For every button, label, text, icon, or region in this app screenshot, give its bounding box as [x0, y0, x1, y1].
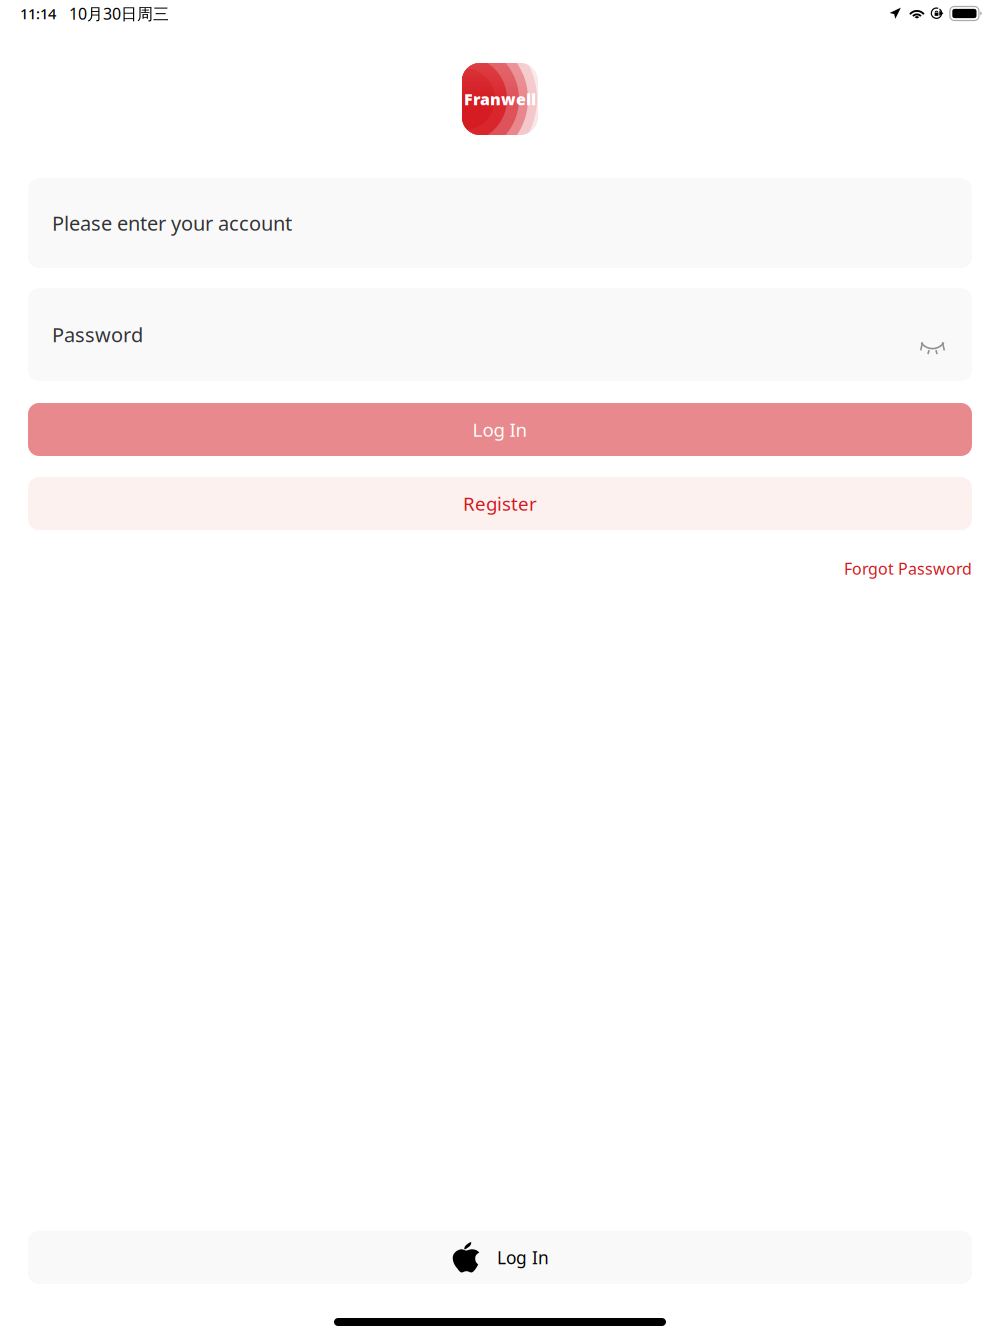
staticText: Log In — [497, 1246, 549, 1269]
staticText: Register — [463, 491, 537, 516]
staticText: 10月30日周三 — [69, 3, 169, 24]
button[interactable]: Log In — [0, 1231, 1000, 1284]
staticText: 11:14 — [20, 4, 56, 23]
staticText: Password — [52, 321, 143, 348]
button[interactable]: Log In — [0, 403, 1000, 456]
button[interactable]: Register — [0, 477, 1000, 530]
button[interactable]: Show password — [910, 313, 948, 355]
staticText: Log In — [472, 417, 527, 442]
button[interactable]: Forgot Password — [844, 553, 972, 584]
staticText: Forgot Password — [844, 558, 972, 579]
staticText: Franwell — [464, 88, 536, 110]
staticText: Please enter your account — [52, 210, 292, 236]
